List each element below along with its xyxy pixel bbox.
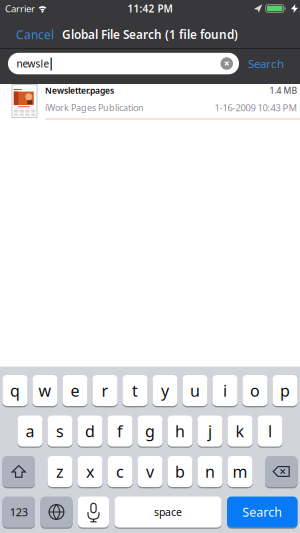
staticText: z xyxy=(56,461,64,482)
staticText: q xyxy=(10,380,20,401)
staticText: h xyxy=(175,420,185,442)
staticText: w xyxy=(38,380,51,401)
button[interactable]: d xyxy=(77,415,102,446)
staticText: iWork Pages Publication xyxy=(45,101,144,114)
button[interactable]: w xyxy=(32,375,57,406)
button[interactable]: Dictate xyxy=(78,496,109,527)
button[interactable]: h xyxy=(167,415,192,446)
button[interactable]: o xyxy=(242,375,267,406)
staticText: Newsletter.pages xyxy=(45,85,114,96)
button[interactable]: s xyxy=(47,415,72,446)
staticText: p xyxy=(280,380,290,401)
button[interactable]: Search xyxy=(248,56,284,71)
button[interactable]: l xyxy=(257,415,282,446)
staticText: x xyxy=(86,461,94,482)
button[interactable]: u xyxy=(182,375,207,406)
staticText: u xyxy=(190,380,200,401)
button[interactable]: z xyxy=(47,456,72,487)
staticText: c xyxy=(116,461,124,482)
staticText: 11:42 PM xyxy=(127,2,172,15)
button[interactable]: r xyxy=(92,375,117,406)
staticText: y xyxy=(161,380,169,401)
staticText: d xyxy=(85,420,95,442)
button[interactable]: Delete xyxy=(265,456,297,487)
button[interactable]: v xyxy=(137,456,162,487)
button[interactable]: g xyxy=(137,415,162,446)
staticText: n xyxy=(205,461,215,482)
button[interactable]: a xyxy=(17,415,42,446)
button[interactable]: t xyxy=(122,375,147,406)
button[interactable]: f xyxy=(107,415,132,446)
button[interactable]: q xyxy=(2,375,27,406)
button[interactable]: m xyxy=(227,456,252,487)
button[interactable]: space xyxy=(114,496,221,527)
button[interactable]: p xyxy=(272,375,297,406)
button[interactable]: Newsletter.pages xyxy=(0,84,300,119)
staticText: o xyxy=(250,380,260,401)
staticText: t xyxy=(132,380,138,401)
button[interactable]: Cancel xyxy=(16,26,54,43)
staticText: f xyxy=(117,420,123,442)
staticText: space xyxy=(154,505,182,519)
staticText: b xyxy=(175,461,185,482)
button[interactable]: x xyxy=(77,456,102,487)
staticText: Carrier xyxy=(5,2,35,15)
button[interactable]: i xyxy=(212,375,237,406)
staticText: Search xyxy=(242,503,282,520)
button[interactable]: Shift xyxy=(2,456,35,487)
button[interactable]: e xyxy=(62,375,87,406)
button[interactable]: c xyxy=(107,456,132,487)
staticText: s xyxy=(56,420,64,442)
staticText: i xyxy=(223,380,227,401)
staticText: l xyxy=(268,420,272,442)
button[interactable]: Numbers xyxy=(2,496,35,527)
button[interactable]: y xyxy=(152,375,177,406)
staticText: a xyxy=(25,420,34,442)
staticText: 123 xyxy=(10,504,28,519)
staticText: newsle xyxy=(16,57,49,70)
staticText: v xyxy=(146,461,154,482)
button[interactable]: b xyxy=(167,456,192,487)
staticText: Search xyxy=(248,56,284,71)
staticText: r xyxy=(101,380,108,401)
button[interactable]: Next keyboard xyxy=(40,496,72,527)
staticText: e xyxy=(70,380,79,401)
button[interactable]: Clear text xyxy=(220,57,233,70)
button[interactable]: Search xyxy=(227,496,297,527)
staticText: j xyxy=(208,420,212,442)
staticText: 1.4 MB xyxy=(269,85,297,96)
staticText: Global File Search (1 file found) xyxy=(62,26,238,43)
staticText: 1-16-2009 10:43 PM xyxy=(214,101,297,114)
staticText: m xyxy=(232,461,247,482)
button[interactable]: k xyxy=(227,415,252,446)
button[interactable]: n xyxy=(197,456,222,487)
staticText: Cancel xyxy=(16,26,54,43)
staticText: g xyxy=(145,420,155,442)
staticText: k xyxy=(235,420,244,442)
button[interactable]: j xyxy=(197,415,222,446)
